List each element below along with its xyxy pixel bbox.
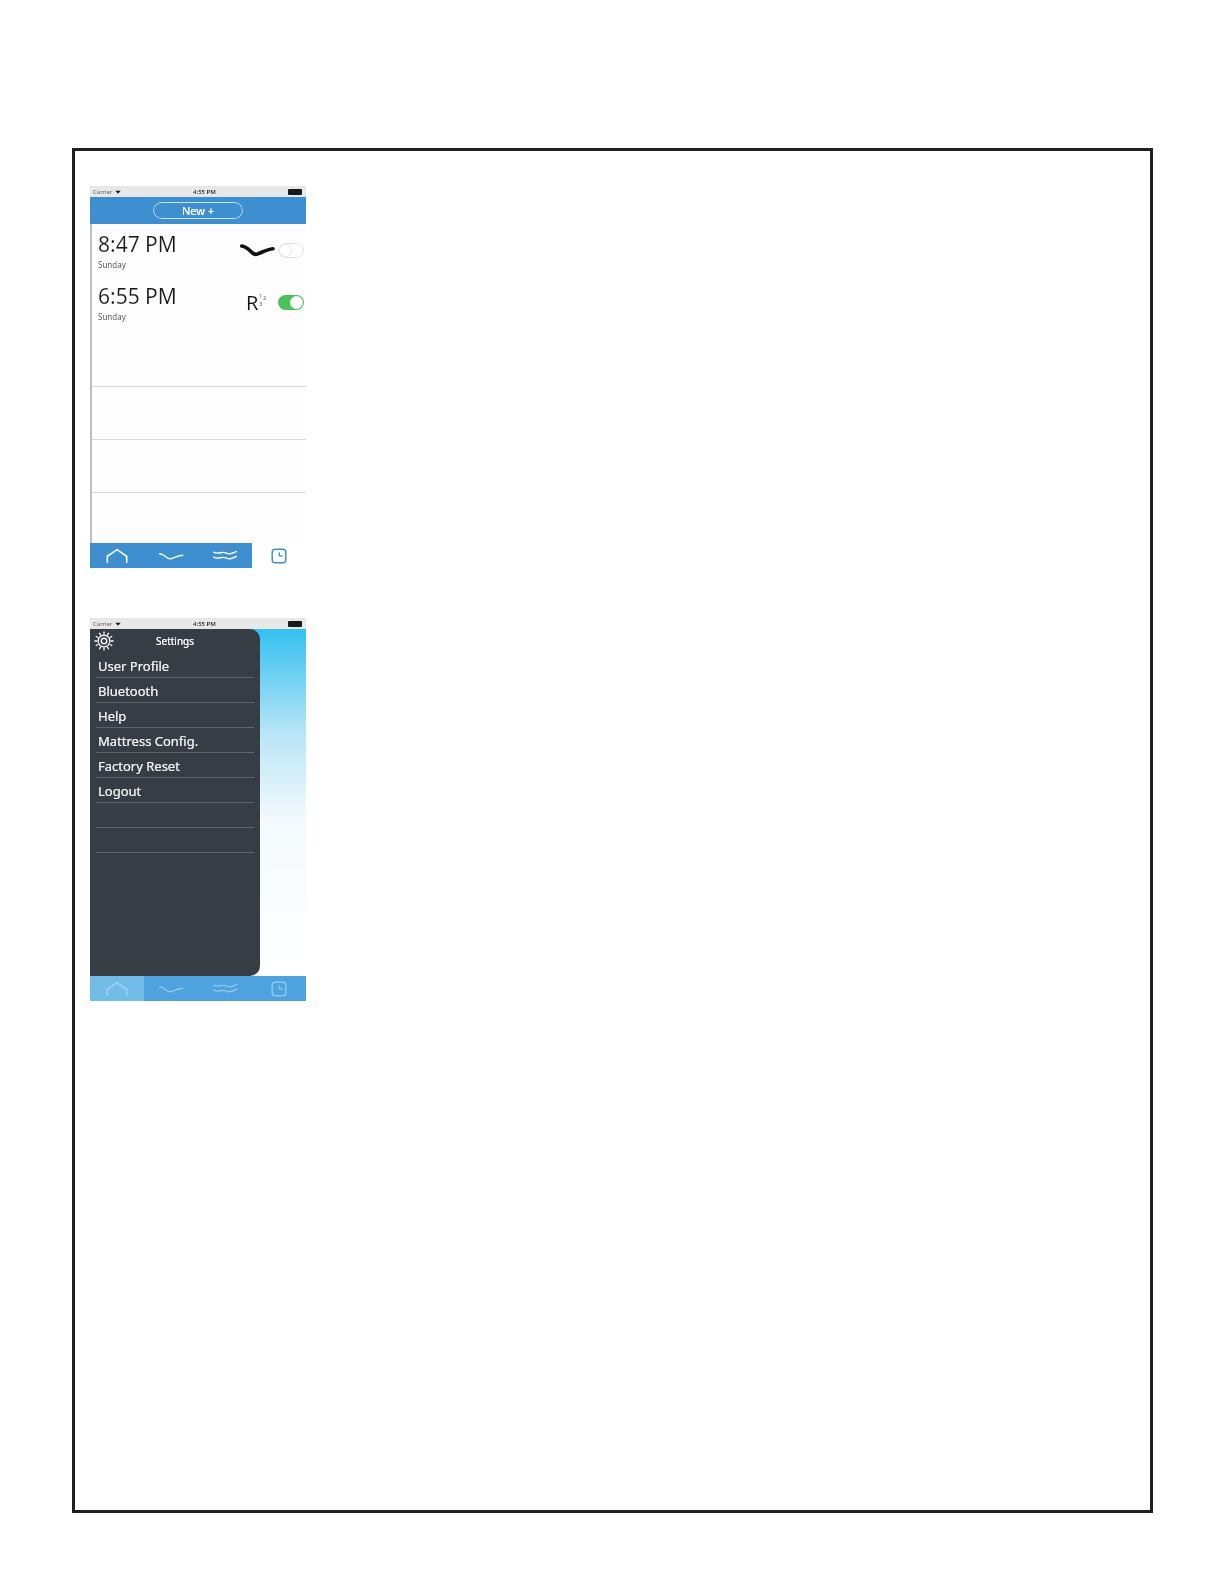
button[interactable]: History xyxy=(252,543,306,568)
staticText: New + xyxy=(182,203,215,218)
button[interactable]: Home xyxy=(90,976,144,1001)
staticText: 2 xyxy=(263,294,267,302)
button[interactable]: Single wave xyxy=(144,543,198,568)
staticText: Help xyxy=(98,707,127,725)
staticText: Bluetooth xyxy=(98,682,159,700)
button[interactable]: History xyxy=(252,976,306,1001)
staticText: Carrier xyxy=(93,188,113,196)
button[interactable]: Factory Reset xyxy=(90,753,260,778)
staticText: 4:55 PM xyxy=(193,188,216,196)
staticText: 4:55 PM xyxy=(193,620,216,628)
staticText: R xyxy=(246,289,259,316)
staticText: 8:47 PM xyxy=(98,230,177,259)
staticText: 3 xyxy=(259,300,263,308)
staticText: Logout xyxy=(98,782,142,800)
button[interactable]: Alarm off xyxy=(278,243,304,258)
staticText: Sunday xyxy=(98,311,126,322)
button[interactable]: User Profile xyxy=(90,653,260,678)
button[interactable]: Mattress Config. xyxy=(90,728,260,753)
button[interactable]: Bluetooth xyxy=(90,678,260,703)
staticText: 6:55 PM xyxy=(98,282,177,311)
staticText: Mattress Config. xyxy=(98,732,199,750)
button[interactable]: New + xyxy=(153,202,243,219)
staticText: Carrier xyxy=(93,620,113,628)
button[interactable]: Settings xyxy=(94,631,114,651)
staticText: 1 xyxy=(259,292,263,300)
staticText: Sunday xyxy=(98,259,126,270)
button[interactable]: 8:47 PM xyxy=(90,224,306,276)
button[interactable]: Single wave xyxy=(144,976,198,1001)
button[interactable]: Double wave xyxy=(198,976,252,1001)
staticText: Factory Reset xyxy=(98,757,180,775)
staticText: Settings xyxy=(156,634,195,648)
button[interactable]: Logout xyxy=(90,778,260,803)
button[interactable]: 6:55 PM xyxy=(90,276,306,328)
button[interactable]: Double wave xyxy=(198,543,252,568)
button[interactable]: Alarm on xyxy=(278,295,304,310)
button[interactable]: Help xyxy=(90,703,260,728)
staticText: User Profile xyxy=(98,657,170,675)
button[interactable]: Home xyxy=(90,543,144,568)
